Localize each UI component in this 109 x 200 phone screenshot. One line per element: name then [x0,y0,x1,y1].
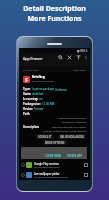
staticText: Briefing [32,75,45,79]
staticText: USER APPS [73,68,86,71]
staticText: VALUE NON-AUDIO [60,135,84,138]
staticText: Description [23,125,40,129]
staticText: Google Play services [34,162,59,166]
button[interactable]: MORE OPTIONS [43,140,67,145]
button[interactable]: Google Play services [19,160,90,170]
staticText: /data/app/flipboard.boxer. storyboard-1/… [39,117,86,123]
staticText: flipboard.boxer.app has created briefing… [35,126,86,133]
staticText: App Freezer [23,56,43,61]
staticText: Packagesize: [23,102,42,106]
staticText: SYSTEM APPS [23,68,39,71]
staticText: MORE OPTIONS [45,141,65,144]
staticText: ● 00:14 [77,49,88,53]
staticText: flipboard.boxer.app [32,79,54,82]
button[interactable]: More options [85,55,87,60]
staticText: Detail Description [23,4,86,14]
staticText: Freezer [34,107,44,111]
staticText: Path [23,112,30,116]
staticText: Type: [23,87,32,91]
button[interactable]: CLEAR DATA [44,154,62,158]
staticText: More Functions [27,14,82,24]
button[interactable]: FREEZE APP [66,154,84,158]
staticText: Unfreeze [55,88,67,92]
staticText: 12.36 MB [42,102,55,106]
button[interactable]: Tools [67,55,72,60]
staticText: Device: [23,107,34,111]
staticText: F [25,76,29,83]
staticText: no [39,97,43,101]
staticText: /system.package [32,87,55,91]
button[interactable]: Live wallpaper picker [19,170,90,180]
staticText: FREEZE APP [67,154,83,158]
staticText: com.google.android.gms [34,166,60,169]
staticText: GOOGLE IT [38,135,52,138]
button[interactable]: GOOGLE IT [36,134,54,139]
button[interactable]: VALUE NON-AUDIO [58,134,86,139]
button[interactable]: Filter [76,55,81,60]
button[interactable]: Search [58,55,63,60]
staticText: CLEAR DATA [45,154,61,158]
staticText: Live wallpaper picker [34,172,60,176]
staticText: State: [23,92,32,96]
staticText: Is running: [23,97,39,101]
staticText: com.android.wallpaper.livepicker [34,176,68,179]
staticText: disabled [32,92,44,96]
